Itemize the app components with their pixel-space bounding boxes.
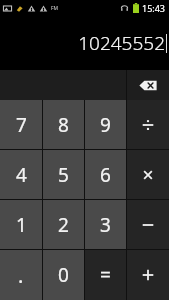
button[interactable]: Subtract	[127, 200, 169, 249]
button[interactable]: Multiply	[127, 150, 169, 199]
staticText: 7	[16, 112, 27, 138]
staticText: =	[100, 262, 111, 288]
button[interactable]: 6	[85, 150, 126, 199]
staticText: 3	[100, 212, 111, 238]
button[interactable]: 8	[43, 100, 84, 149]
button[interactable]: 7	[0, 100, 42, 149]
staticText: 9	[100, 112, 111, 138]
staticText: .	[18, 262, 24, 289]
staticText: 4	[16, 162, 27, 188]
staticText: 8	[58, 112, 69, 138]
button[interactable]: =	[85, 250, 126, 300]
button[interactable]: 9	[85, 100, 126, 149]
button[interactable]: Delete	[127, 70, 169, 100]
button[interactable]: .	[0, 250, 42, 300]
staticText: 5	[58, 162, 69, 188]
button[interactable]: 4	[0, 150, 42, 199]
button[interactable]: 1	[0, 200, 42, 249]
staticText: FM	[51, 5, 59, 12]
staticText: 1	[16, 212, 27, 238]
button[interactable]: 3	[85, 200, 126, 249]
button[interactable]: Divide	[127, 100, 169, 149]
staticText: 6	[100, 162, 111, 188]
staticText: 2	[58, 212, 69, 238]
button[interactable]: 2	[43, 200, 84, 249]
button[interactable]: 0	[43, 250, 84, 300]
button[interactable]: 5	[43, 150, 84, 199]
staticText: 15:43	[142, 2, 166, 14]
button[interactable]: Add	[127, 250, 169, 300]
staticText: 10245552	[78, 30, 165, 56]
staticText: 0	[58, 262, 69, 288]
